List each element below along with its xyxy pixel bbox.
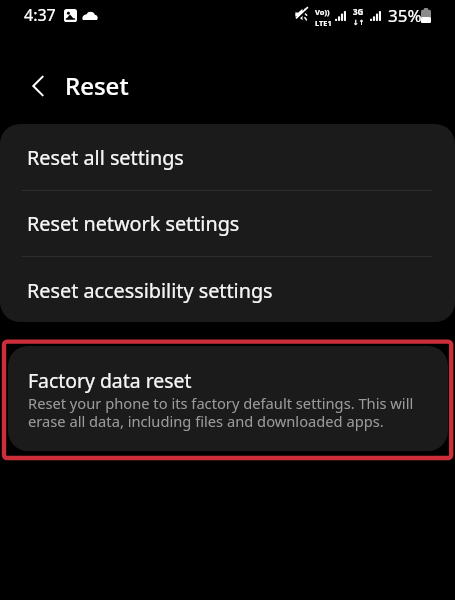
staticText: LTE1 [315,18,332,28]
staticText: Reset network settings [27,210,240,237]
button[interactable]: Factory data reset [8,346,448,451]
button[interactable]: Back [16,64,60,108]
staticText: Vo)) [315,7,330,17]
staticText: Reset your phone to its factory default … [28,393,414,431]
staticText: Factory data reset [28,367,192,393]
staticText: Reset [65,69,129,102]
staticText: 4:37 [24,4,56,26]
button[interactable]: Reset all settings [0,124,455,190]
staticText: ↓↑ [353,19,365,27]
button[interactable]: Reset accessibility settings [0,257,455,322]
staticText: Reset accessibility settings [27,277,273,304]
staticText: 35% [388,4,422,27]
button[interactable]: Reset network settings [0,190,455,256]
staticText: Reset all settings [27,144,184,171]
staticText: 3G [353,6,364,17]
